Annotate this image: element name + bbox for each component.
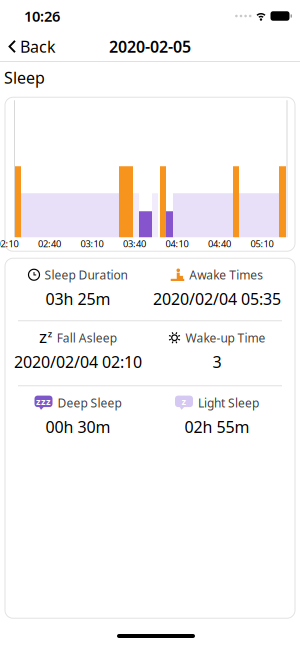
staticText: Sleep Duration <box>44 267 127 283</box>
staticText: 02h 55m <box>184 416 249 437</box>
staticText: 03:10 <box>80 238 103 250</box>
staticText: Z <box>39 329 47 347</box>
staticText: Fall Asleep <box>57 330 117 346</box>
staticText: zzz <box>36 395 51 408</box>
staticText: 00h 30m <box>45 416 110 437</box>
staticText: 2020/02/04 05:35 <box>153 288 281 309</box>
staticText: Light Sleep <box>198 395 259 411</box>
staticText: 2020/02/04 02:10 <box>14 351 142 372</box>
staticText: 02:40 <box>38 238 61 250</box>
staticText: z <box>48 327 52 340</box>
staticText: 03:40 <box>123 238 146 250</box>
staticText: 3 <box>212 351 221 372</box>
button[interactable]: Back <box>0 30 56 63</box>
staticText: 03h 25m <box>45 288 110 309</box>
staticText: 02:10 <box>0 238 18 250</box>
staticText: Back <box>20 36 56 57</box>
staticText: 04:40 <box>208 238 231 250</box>
staticText: 04:10 <box>165 238 188 250</box>
staticText: Deep Sleep <box>57 395 121 411</box>
staticText: 05:10 <box>250 238 273 250</box>
staticText: z <box>181 395 186 408</box>
staticText: Wake-up Time <box>185 330 265 346</box>
staticText: 10:26 <box>24 6 60 26</box>
staticText: 2020-02-05 <box>109 36 191 57</box>
staticText: Sleep <box>4 67 45 88</box>
staticText: Awake Times <box>189 267 263 283</box>
